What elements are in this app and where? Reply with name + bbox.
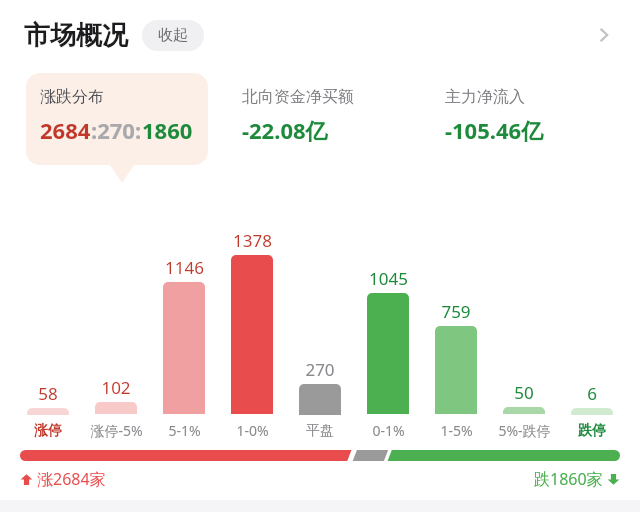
button[interactable]: 收起 [142,20,204,51]
button[interactable]: 涨跌分布 [26,73,208,165]
staticText: :270: [91,115,142,145]
staticText: 5-1% [168,421,201,440]
staticText: 1860 [142,115,193,145]
staticText: 102 [101,376,131,399]
staticText: 5%-跌停 [498,421,551,440]
staticText: 1-5% [440,421,473,440]
button[interactable]: 北向资金净买额 [228,73,411,165]
staticText: 0-1% [372,421,405,440]
staticText: 跌停 [578,422,606,440]
staticText: 收起 [158,26,188,45]
staticText: 6 [587,382,597,405]
staticText: 涨停-5% [90,421,143,440]
button[interactable]: 主力净流入 [431,73,614,165]
staticText: -105.46亿 [445,115,544,145]
staticText: 主力净流入 [445,87,525,107]
staticText: 270 [305,358,335,381]
staticText: 市场概况 [24,19,128,52]
staticText: 58 [38,382,58,405]
staticText: 涨2684家 [37,468,106,490]
staticText: 涨跌分布 [40,87,104,107]
staticText: 涨停 [34,422,62,440]
button[interactable]: More [586,17,622,53]
staticText: 759 [441,300,471,323]
staticText: -22.08亿 [242,115,328,145]
staticText: 北向资金净买额 [242,87,354,107]
staticText: 1045 [369,267,408,290]
staticText: 50 [514,381,534,404]
staticText: 跌1860家 [534,468,603,490]
staticText: 2684 [40,115,91,145]
staticText: 1146 [165,256,204,279]
staticText: 1378 [233,229,272,252]
staticText: 1-0% [236,421,269,440]
staticText: 平盘 [306,422,334,440]
